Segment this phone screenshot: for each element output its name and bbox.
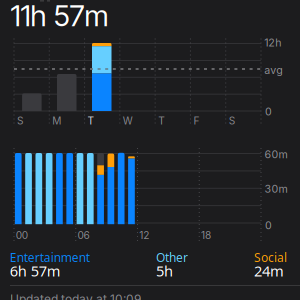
staticText: 18 bbox=[201, 229, 211, 241]
staticText: 5h bbox=[156, 261, 173, 280]
staticText: 24m bbox=[254, 261, 284, 280]
staticText: M bbox=[52, 115, 61, 127]
staticText: S bbox=[229, 115, 236, 127]
staticText: 00 bbox=[16, 229, 28, 241]
staticText: 30m bbox=[264, 182, 287, 195]
staticText: 12h bbox=[264, 36, 281, 49]
staticText: Social bbox=[254, 249, 287, 265]
staticText: 06 bbox=[77, 229, 89, 241]
staticText: T bbox=[158, 115, 165, 127]
staticText: T bbox=[88, 115, 95, 127]
staticText: 12 bbox=[139, 229, 149, 241]
staticText: Entertainment bbox=[10, 249, 90, 265]
staticText: avg bbox=[264, 64, 283, 77]
staticText: Other bbox=[156, 249, 188, 265]
staticText: W bbox=[123, 115, 133, 127]
staticText: 11h 57m bbox=[10, 0, 108, 33]
staticText: 0 bbox=[265, 219, 272, 232]
staticText: 0 bbox=[265, 105, 272, 118]
staticText: 60m bbox=[264, 148, 287, 161]
staticText: 6h 57m bbox=[10, 261, 61, 280]
staticText: S bbox=[17, 115, 24, 127]
staticText: Updated today at 10:09 bbox=[10, 292, 141, 300]
staticText: F bbox=[193, 115, 199, 127]
